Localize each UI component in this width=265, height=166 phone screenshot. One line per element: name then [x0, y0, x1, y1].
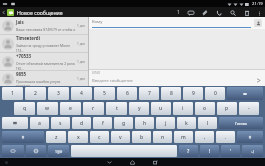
- button[interactable]: Готово: [219, 117, 263, 129]
- button[interactable]: k: [177, 117, 196, 129]
- staticText: !: [209, 148, 211, 155]
- button[interactable]: New message: [187, 9, 194, 16]
- button[interactable]: c: [90, 131, 109, 143]
- button[interactable]: p: [217, 102, 237, 115]
- button[interactable]: s: [51, 117, 70, 129]
- button[interactable]: Key: [2, 145, 24, 157]
- staticText: Готово: [235, 121, 247, 126]
- button[interactable]: q: [14, 102, 35, 115]
- staticText: 2: [34, 90, 37, 97]
- staticText: z: [55, 134, 58, 141]
- button[interactable]: f: [93, 117, 112, 129]
- button[interactable]: 7: [139, 87, 159, 100]
- staticText: .: [225, 134, 227, 141]
- button[interactable]: t: [106, 102, 127, 115]
- button[interactable]: !: [200, 145, 219, 157]
- button[interactable]: Key: [26, 145, 46, 157]
- button[interactable]: Тimeкterdi: [0, 35, 88, 52]
- button[interactable]: x: [68, 131, 88, 143]
- staticText: g: [122, 120, 126, 127]
- button[interactable]: 9855: [0, 71, 88, 86]
- button[interactable]: h: [135, 117, 154, 129]
- button[interactable]: Key: [2, 117, 28, 129]
- button[interactable]: m: [174, 131, 193, 143]
- staticText: Введите сообщение: [92, 78, 255, 84]
- staticText: y: [138, 105, 141, 112]
- button[interactable]: 2: [25, 87, 46, 100]
- button[interactable]: More options: [256, 10, 262, 16]
- button[interactable]: y: [129, 102, 149, 115]
- button[interactable]: .: [216, 131, 235, 143]
- staticText: c: [98, 134, 101, 141]
- button[interactable]: 5: [94, 87, 115, 100]
- staticText: ,: [204, 134, 206, 141]
- staticText: p: [225, 105, 229, 112]
- button[interactable]: Messaging: [7, 9, 14, 16]
- button[interactable]: l: [198, 117, 217, 129]
- button[interactable]: ': [221, 145, 240, 157]
- staticText: x: [77, 134, 80, 141]
- staticText: h: [143, 120, 147, 127]
- button[interactable]: Home: [128, 158, 137, 166]
- staticText: w: [45, 105, 50, 112]
- button[interactable]: :-): [242, 145, 263, 157]
- button[interactable]: Jais: [0, 17, 88, 34]
- button[interactable]: r: [83, 102, 104, 115]
- button[interactable]: j: [156, 117, 175, 129]
- button[interactable]: -: [239, 102, 259, 115]
- button[interactable]: g: [114, 117, 133, 129]
- button[interactable]: w: [37, 102, 58, 115]
- staticText: e: [69, 105, 72, 112]
- button[interactable]: Add contact: [254, 19, 262, 27]
- button[interactable]: 1@#: [48, 145, 69, 157]
- button[interactable]: 9: [183, 87, 203, 100]
- button[interactable]: Key: [2, 131, 44, 143]
- staticText: +70533: [16, 53, 32, 59]
- staticText: d: [80, 120, 84, 127]
- staticText: Новое сообщение: [17, 9, 63, 16]
- button[interactable]: Key: [227, 87, 263, 100]
- button[interactable]: Send: [255, 77, 262, 84]
- button[interactable]: 0: [205, 87, 225, 100]
- button[interactable]: n: [153, 131, 172, 143]
- button[interactable]: ,: [195, 131, 214, 143]
- button[interactable]: Delete: [243, 9, 250, 16]
- button[interactable]: z: [46, 131, 66, 143]
- staticText: k: [185, 120, 188, 127]
- staticText: 5: [103, 90, 106, 97]
- button[interactable]: e: [60, 102, 81, 115]
- staticText: m: [181, 134, 186, 141]
- button[interactable]: 4: [71, 87, 92, 100]
- button[interactable]: 3: [48, 87, 69, 100]
- staticText: Тimeкterdi: [16, 35, 40, 41]
- button[interactable]: Key: [71, 145, 177, 157]
- staticText: q: [23, 105, 27, 112]
- staticText: Произошла ошибка услуги 9000ГОК...: [16, 79, 77, 86]
- button[interactable]: Введите сообщение: [89, 75, 265, 86]
- staticText: Отчет объемкой заменителя 2 роза ГЮ...: [16, 61, 77, 70]
- button[interactable]: Call: [215, 9, 222, 16]
- staticText: ': [230, 148, 232, 155]
- button[interactable]: Key: [237, 131, 263, 143]
- staticText: Jais: [16, 19, 24, 25]
- staticText: 1 дек: [77, 77, 86, 81]
- button[interactable]: Back: [105, 158, 114, 166]
- staticText: ?: [187, 148, 190, 155]
- button[interactable]: Search: [229, 9, 236, 16]
- button[interactable]: Attach: [201, 9, 208, 16]
- button[interactable]: 6: [117, 87, 137, 100]
- staticText: 9: [192, 90, 195, 97]
- button[interactable]: o: [195, 102, 215, 115]
- button[interactable]: d: [72, 117, 91, 129]
- staticText: 1 дек: [77, 60, 86, 64]
- button[interactable]: 8: [161, 87, 181, 100]
- button[interactable]: a: [30, 117, 49, 129]
- button[interactable]: u: [151, 102, 171, 115]
- button[interactable]: v: [111, 131, 130, 143]
- button[interactable]: 1: [2, 87, 23, 100]
- button[interactable]: +70533: [0, 53, 88, 70]
- button[interactable]: b: [132, 131, 151, 143]
- button[interactable]: ?: [179, 145, 198, 157]
- button[interactable]: i: [173, 102, 193, 115]
- button[interactable]: Recent apps: [151, 158, 160, 166]
